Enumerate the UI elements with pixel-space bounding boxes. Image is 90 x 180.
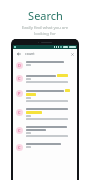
staticText: count <box>25 51 35 56</box>
staticText: C <box>18 128 21 133</box>
staticText: C <box>18 76 21 81</box>
button[interactable]: D <box>13 58 77 71</box>
staticText: Easily find what you are looking for <box>8 25 82 36</box>
button[interactable]: C <box>13 140 77 153</box>
staticText: P <box>18 91 21 96</box>
button[interactable]: C <box>13 105 77 123</box>
button[interactable]: P <box>13 86 77 105</box>
button[interactable]: C <box>13 71 77 86</box>
staticText: D <box>18 63 21 68</box>
button[interactable]: Clear search <box>70 52 74 56</box>
staticText: Search <box>28 8 63 23</box>
button[interactable]: Back <box>13 49 77 58</box>
button[interactable]: C <box>13 123 77 140</box>
button[interactable]: Back <box>16 51 21 56</box>
staticText: C <box>18 110 21 115</box>
staticText: C <box>18 145 21 150</box>
